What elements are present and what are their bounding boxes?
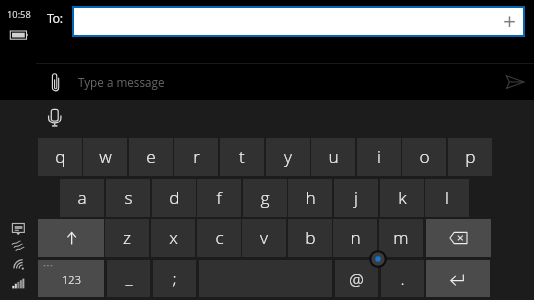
staticText: p [465,145,476,169]
staticText: k [398,186,407,210]
button[interactable]: . [381,260,424,297]
button[interactable]: i [357,138,401,176]
button[interactable]: Backspace [426,219,491,257]
button[interactable]: Send [504,74,526,90]
button[interactable]: z [105,219,149,257]
button[interactable]: r [174,138,218,176]
staticText: h [305,186,316,210]
staticText: g [260,186,270,210]
button[interactable]: Shift [38,219,104,257]
button[interactable]: Enter [426,260,490,297]
button[interactable]: b [288,219,332,257]
button[interactable]: c [197,219,241,257]
staticText: q [55,145,66,169]
staticText: n [350,226,361,250]
staticText: d [169,186,180,210]
staticText: l [445,186,449,210]
button[interactable]: ; [153,260,196,297]
staticText: t [239,145,245,169]
button[interactable]: n [333,219,377,257]
button[interactable]: k [380,179,424,217]
staticText: a [77,186,87,210]
staticText: y [284,145,292,169]
staticText: r [193,145,200,169]
button[interactable]: a [60,179,104,217]
button[interactable]: Numbers [38,260,104,297]
button[interactable]: e [129,138,173,176]
button[interactable]: w [83,138,127,176]
button[interactable]: _ [107,260,150,297]
staticText: f [216,186,222,210]
button[interactable]: f [197,179,241,217]
button[interactable]: y [266,138,310,176]
staticText: 10:58 [7,8,31,21]
staticText: e [146,145,156,169]
button[interactable]: Attach [46,70,66,94]
button[interactable]: o [402,138,446,176]
button[interactable]: Add recipient [498,10,522,34]
button[interactable]: x [151,219,195,257]
staticText: . [400,267,405,291]
staticText: b [305,226,316,250]
button[interactable]: l [425,179,469,217]
button[interactable]: h [288,179,332,217]
staticText: j [354,186,358,210]
button[interactable]: @ [335,260,378,297]
button[interactable]: t [220,138,264,176]
staticText: c [215,226,224,250]
staticText: z [123,226,131,250]
button[interactable]: p [448,138,492,176]
staticText: To: [47,10,63,27]
button[interactable] [72,6,525,37]
staticText: w [99,145,112,169]
button[interactable]: v [242,219,286,257]
button[interactable]: m [379,219,423,257]
button[interactable]: Voice input [46,107,64,129]
staticText: v [260,226,268,250]
staticText: x [169,226,178,250]
button[interactable]: s [106,179,150,217]
staticText: 123 [62,272,81,287]
staticText: _ [125,266,133,290]
staticText: s [124,186,133,210]
staticText: o [419,145,430,169]
staticText: Type a message [78,74,165,90]
staticText: i [377,145,381,169]
staticText: @ [349,269,364,291]
button[interactable]: j [334,179,378,217]
button[interactable]: u [311,138,355,176]
staticText: ; [172,267,177,291]
staticText: u [328,145,339,169]
button[interactable]: g [243,179,287,217]
button[interactable]: q [38,138,82,176]
staticText: m [393,226,409,250]
button[interactable]: d [152,179,196,217]
